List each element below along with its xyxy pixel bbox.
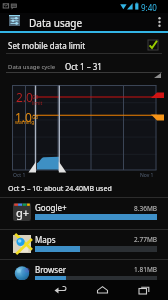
button[interactable] xyxy=(0,34,168,53)
staticText: Google+ xyxy=(35,202,67,213)
staticText: g+ xyxy=(16,205,30,220)
staticText: Data usage cycle xyxy=(8,63,56,71)
staticText: 9:40 xyxy=(141,2,157,13)
staticText: Maps xyxy=(35,234,56,245)
button[interactable] xyxy=(0,260,168,290)
staticText: GB xyxy=(32,114,39,120)
button[interactable] xyxy=(0,55,168,77)
staticText: Oct 1 – 31 xyxy=(65,61,102,72)
staticText: 8.36MB xyxy=(107,204,157,213)
staticText: 2.77MB xyxy=(107,235,157,244)
staticText: Oct 5 – 10: about 24.40MB used xyxy=(8,184,112,194)
staticText: 1.0 xyxy=(15,109,32,125)
staticText: Set mobile data limit xyxy=(8,40,86,51)
button[interactable]: More options xyxy=(152,13,168,31)
staticText: 2.0 xyxy=(16,89,33,105)
button[interactable]: Recent apps xyxy=(122,280,168,300)
staticText: GB xyxy=(32,94,39,100)
button[interactable] xyxy=(6,13,76,31)
staticText: Oct 1 xyxy=(13,172,26,179)
button[interactable]: Back xyxy=(38,280,84,300)
staticText: Browser xyxy=(35,264,66,275)
staticText: Nov 1 xyxy=(140,172,154,179)
button[interactable] xyxy=(0,230,168,260)
staticText: 1.81MB xyxy=(107,265,157,274)
staticText: Data usage xyxy=(29,16,83,30)
button[interactable] xyxy=(0,198,168,228)
button[interactable]: Home xyxy=(80,280,126,300)
staticText: warning xyxy=(15,119,35,126)
staticText: limit xyxy=(32,100,43,107)
